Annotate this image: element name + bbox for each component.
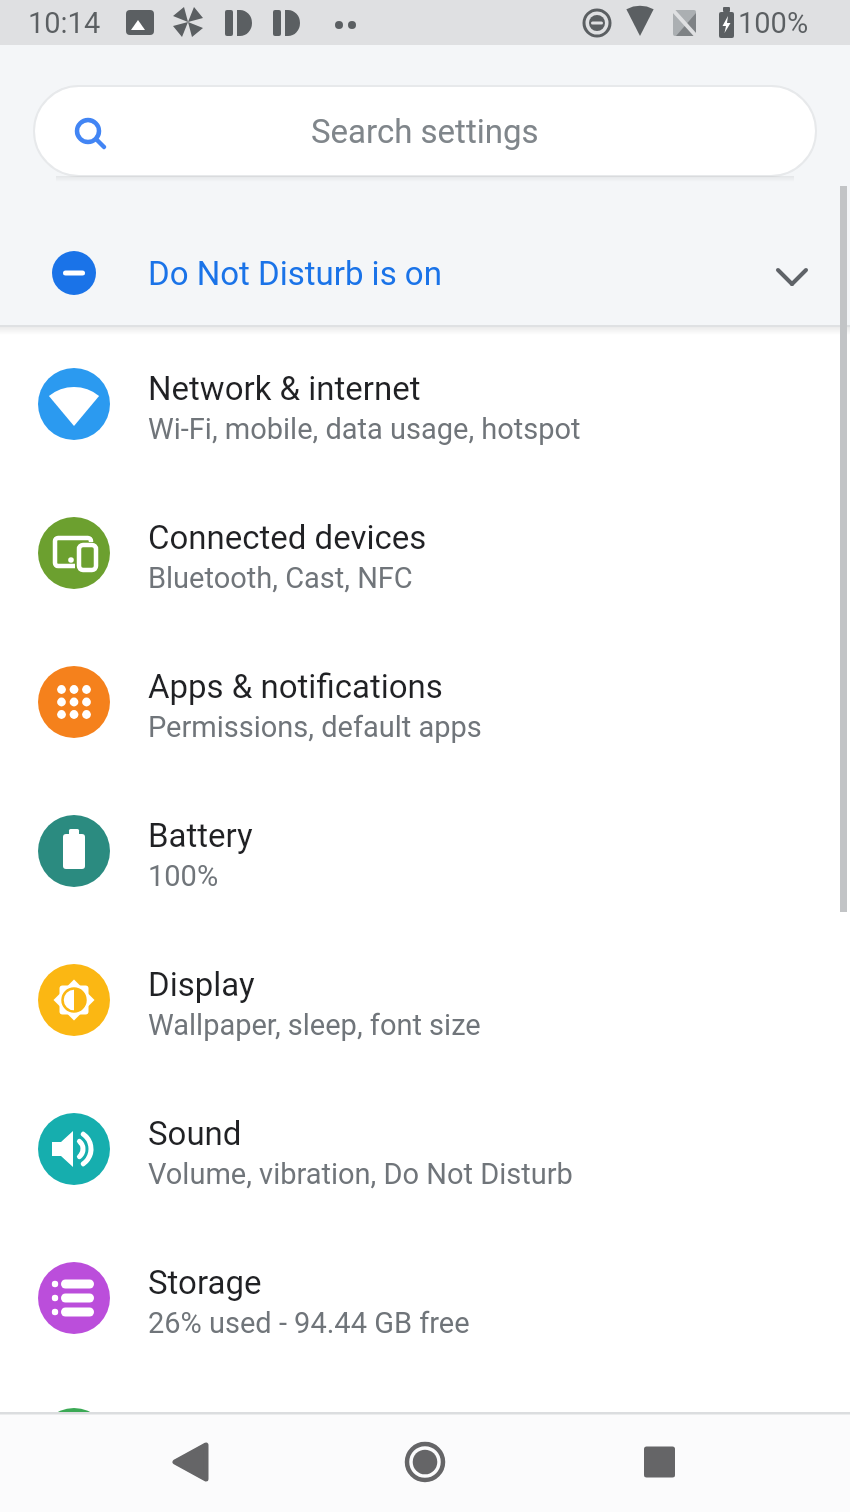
staticText: 100% — [148, 859, 219, 893]
staticText: Bluetooth, Cast, NFC — [148, 561, 413, 595]
staticText: Do Not Disturb is on — [148, 254, 442, 293]
staticText: Network & internet — [148, 369, 421, 408]
staticText: 100% — [738, 6, 809, 40]
staticText: Sound — [148, 1114, 242, 1153]
staticText: Battery — [148, 816, 253, 855]
staticText: Permissions, default apps — [148, 710, 482, 744]
staticText: Storage — [148, 1263, 262, 1302]
staticText: Wi-Fi, mobile, data usage, hotspot — [148, 412, 581, 446]
staticText: Display — [148, 965, 255, 1004]
staticText: Connected devices — [148, 518, 427, 557]
staticText: Wallpaper, sleep, font size — [148, 1008, 481, 1042]
staticText: Volume, vibration, Do Not Disturb — [148, 1157, 573, 1191]
staticText: Apps & notifications — [148, 667, 443, 706]
staticText: 26% used - 94.44 GB free — [148, 1306, 470, 1340]
staticText: 10:14 — [28, 6, 101, 40]
staticText: Search settings — [311, 112, 539, 151]
